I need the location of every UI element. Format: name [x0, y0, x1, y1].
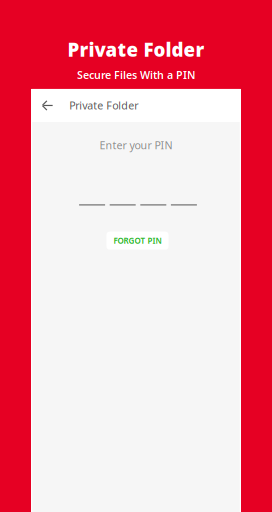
button[interactable]: Back	[36, 89, 58, 122]
staticText: Secure Files With a PIN	[77, 68, 195, 82]
staticText: Private Folder	[69, 98, 138, 113]
staticText: Private Folder	[67, 37, 204, 62]
staticText: FORGOT PIN	[113, 235, 161, 246]
button[interactable]: FORGOT PIN	[106, 232, 168, 250]
staticText: Enter your PIN	[99, 138, 172, 152]
